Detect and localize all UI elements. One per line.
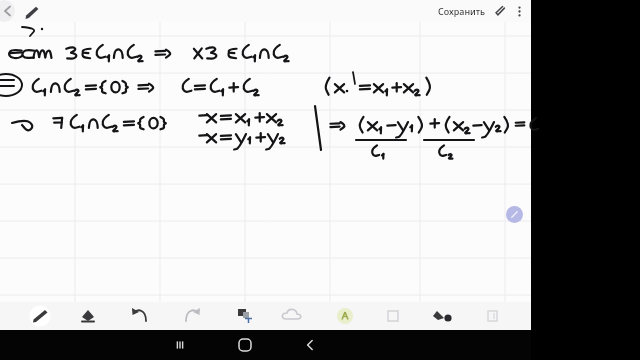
button[interactable]: Ink colour (429, 302, 457, 330)
button[interactable]: Select (379, 302, 407, 330)
button[interactable]: Highlighter (331, 302, 359, 330)
staticText: Сохранить (438, 5, 486, 17)
button[interactable]: More options (510, 2, 528, 20)
button[interactable]: Pen settings (506, 206, 523, 223)
button[interactable]: Сохранить (434, 3, 490, 19)
button[interactable]: Back (0, 0, 15, 22)
button[interactable]: Text (229, 302, 257, 330)
button[interactable]: More tools (478, 302, 506, 330)
button[interactable]: Pen (26, 302, 54, 330)
button[interactable]: Back (295, 330, 325, 360)
button[interactable]: Redo (178, 302, 206, 330)
button[interactable]: Home (230, 330, 260, 360)
button[interactable]: Recents (165, 330, 195, 360)
button[interactable]: Pen (21, 1, 41, 21)
button[interactable]: Attach (490, 1, 510, 21)
button[interactable]: Undo (126, 302, 154, 330)
button[interactable]: Cloud sync (279, 302, 307, 330)
button[interactable]: Eraser (74, 302, 102, 330)
